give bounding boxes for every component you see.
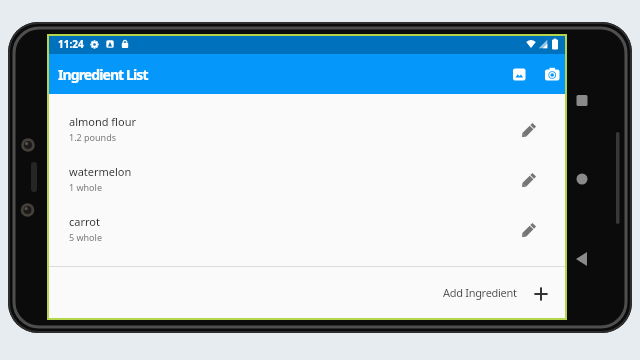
staticText: almond flour xyxy=(69,114,136,129)
button[interactable]: Add Ingredient xyxy=(47,267,567,320)
staticText: watermelon xyxy=(69,164,132,179)
staticText: carrot xyxy=(69,214,100,229)
staticText: 5 whole xyxy=(69,231,102,243)
button[interactable] xyxy=(517,167,539,189)
button[interactable]: watermelon xyxy=(47,153,567,203)
staticText: 11:24 xyxy=(58,37,84,51)
button[interactable] xyxy=(507,62,531,86)
staticText: Add Ingredient xyxy=(443,285,517,300)
button[interactable]: carrot xyxy=(47,203,567,253)
button[interactable] xyxy=(540,62,564,86)
staticText: 1 whole xyxy=(69,181,102,193)
button[interactable]: almond flour xyxy=(47,103,567,153)
staticText: 1.2 pounds xyxy=(69,131,116,143)
button[interactable] xyxy=(517,217,539,239)
staticText: Ingredient List xyxy=(58,65,148,84)
button[interactable] xyxy=(517,117,539,139)
